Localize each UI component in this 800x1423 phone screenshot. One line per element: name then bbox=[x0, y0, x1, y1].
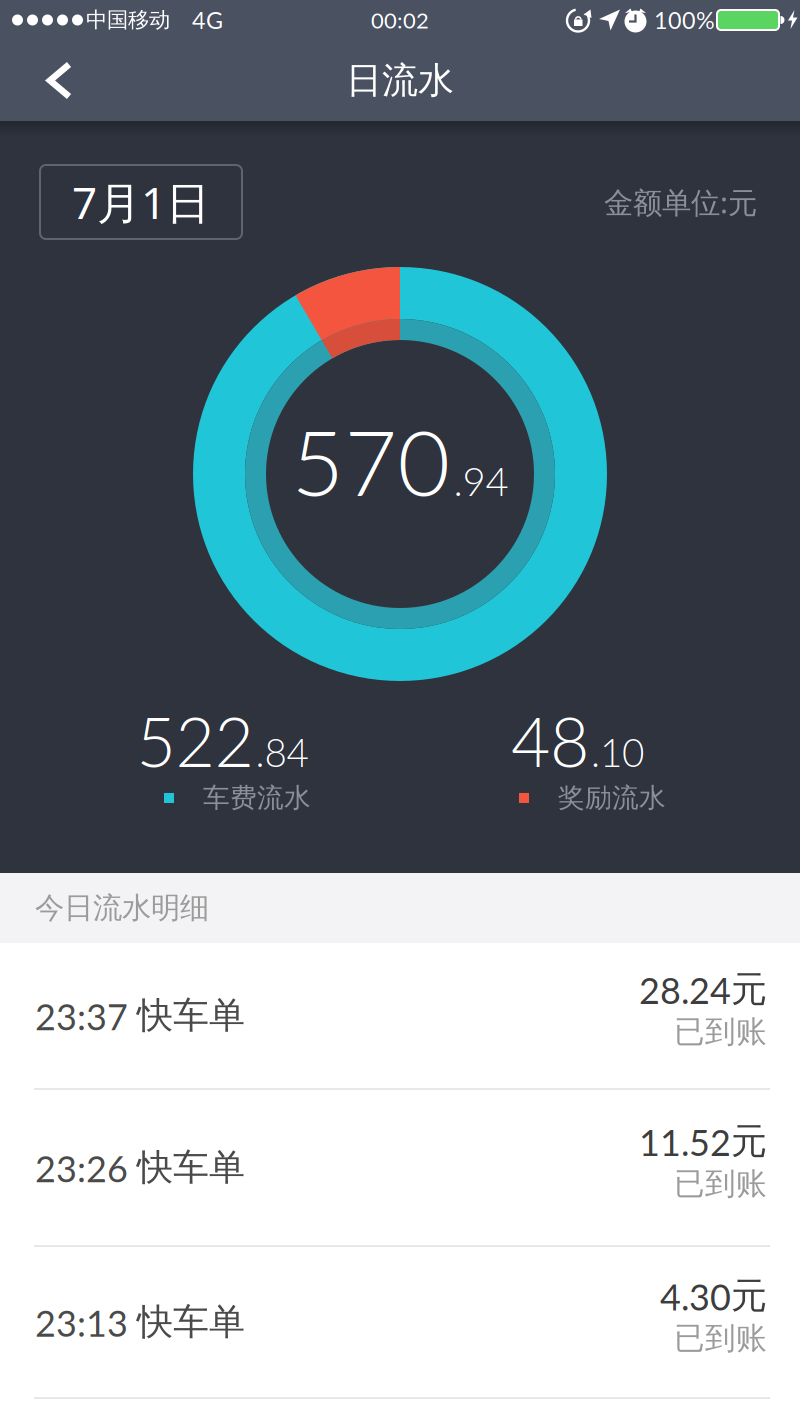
staticText: 522 bbox=[136, 700, 253, 782]
staticText: 已到账 bbox=[674, 1013, 767, 1050]
staticText: 4G bbox=[192, 6, 223, 34]
staticText: 23:37 快车单 bbox=[35, 993, 245, 1038]
staticText: 车费流水 bbox=[203, 782, 311, 814]
button[interactable] bbox=[0, 40, 74, 120]
staticText: 已到账 bbox=[674, 1319, 767, 1357]
button[interactable]: 23:37 快车单 bbox=[0, 943, 800, 1090]
staticText: .84 bbox=[255, 729, 308, 775]
staticText: 100% bbox=[654, 6, 715, 34]
staticText: 7月1日 bbox=[72, 173, 210, 231]
staticText: 11.52元 bbox=[639, 1118, 767, 1164]
staticText: .94 bbox=[453, 457, 508, 505]
staticText: 中国移动 bbox=[86, 7, 170, 33]
staticText: 已到账 bbox=[674, 1165, 767, 1202]
staticText: 570 bbox=[291, 407, 450, 515]
staticText: 23:26 快车单 bbox=[35, 1145, 245, 1190]
button[interactable]: 7月1日 bbox=[40, 165, 242, 239]
staticText: 48 bbox=[511, 700, 589, 782]
staticText: .10 bbox=[591, 729, 644, 775]
button[interactable]: 23:26 快车单 bbox=[0, 1090, 800, 1247]
staticText: 日流水 bbox=[346, 58, 454, 103]
staticText: 00:02 bbox=[371, 7, 429, 33]
button[interactable]: 23:13 快车单 bbox=[0, 1247, 800, 1399]
staticText: 金额单位:元 bbox=[604, 182, 757, 221]
staticText: 23:13 快车单 bbox=[35, 1299, 245, 1345]
staticText: 今日流水明细 bbox=[35, 890, 209, 926]
staticText: 奖励流水 bbox=[558, 782, 666, 814]
staticText: 4.30元 bbox=[660, 1273, 767, 1318]
staticText: 28.24元 bbox=[639, 966, 767, 1012]
